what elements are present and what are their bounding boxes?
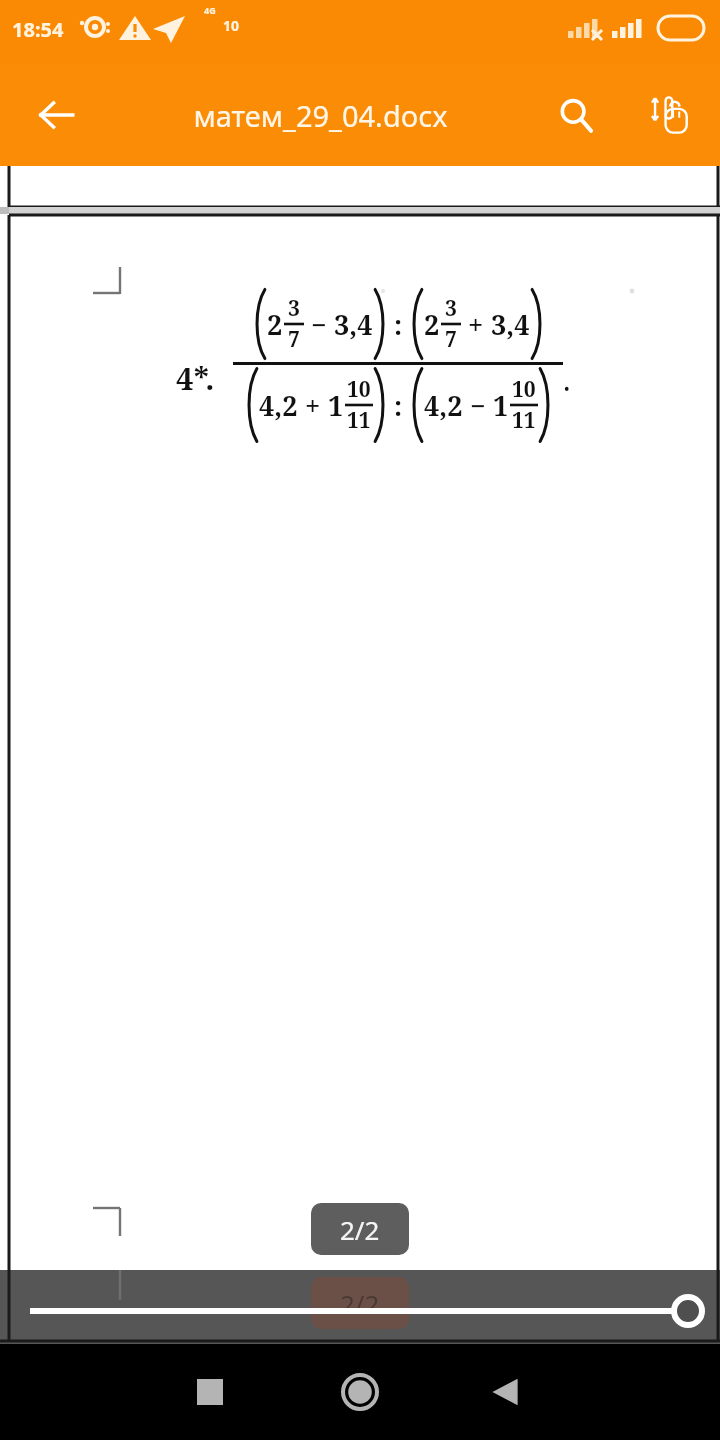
staticText: 1: [328, 387, 344, 424]
staticText: 7: [288, 325, 300, 354]
staticText: 7: [445, 325, 457, 354]
staticText: 4,2: [424, 387, 463, 424]
button[interactable]: 2/2: [0, 1270, 720, 1344]
staticText: 1: [493, 387, 509, 424]
staticText: 18:54: [12, 16, 64, 43]
staticText: 2: [267, 306, 283, 343]
staticText: 3: [445, 294, 457, 323]
staticText: +: [298, 387, 328, 424]
staticText: 3,4: [491, 306, 530, 343]
staticText: :: [387, 306, 410, 343]
button[interactable]: Back: [457, 1344, 553, 1440]
staticText: −: [304, 306, 334, 343]
button[interactable]: Home: [312, 1344, 408, 1440]
staticText: −: [463, 387, 493, 424]
staticText: 2: [424, 306, 440, 343]
staticText: 4G: [204, 4, 216, 16]
staticText: +: [461, 306, 491, 343]
staticText: матем_29_04.docx: [193, 96, 448, 135]
staticText: 10: [347, 375, 371, 404]
button[interactable]: Search: [540, 79, 612, 151]
button[interactable]: Scroll mode: [634, 79, 706, 151]
staticText: .: [563, 359, 571, 400]
staticText: 10: [512, 375, 536, 404]
staticText: 11: [512, 406, 536, 435]
staticText: 10: [223, 16, 240, 35]
staticText: :: [387, 387, 410, 424]
staticText: 4*.: [176, 357, 215, 399]
staticText: 2/2: [340, 1286, 380, 1321]
button[interactable]: матем_29_04.docx: [100, 80, 540, 150]
button[interactable]: 4*.: [0, 166, 720, 1270]
button[interactable]: 2/2: [311, 1203, 409, 1255]
staticText: 3,4: [334, 306, 373, 343]
staticText: 3: [288, 294, 300, 323]
staticText: 11: [347, 406, 371, 435]
button[interactable]: Recent apps: [162, 1344, 258, 1440]
staticText: 4,2: [259, 387, 298, 424]
button[interactable]: Back: [20, 79, 92, 151]
staticText: 2/2: [340, 1212, 380, 1247]
